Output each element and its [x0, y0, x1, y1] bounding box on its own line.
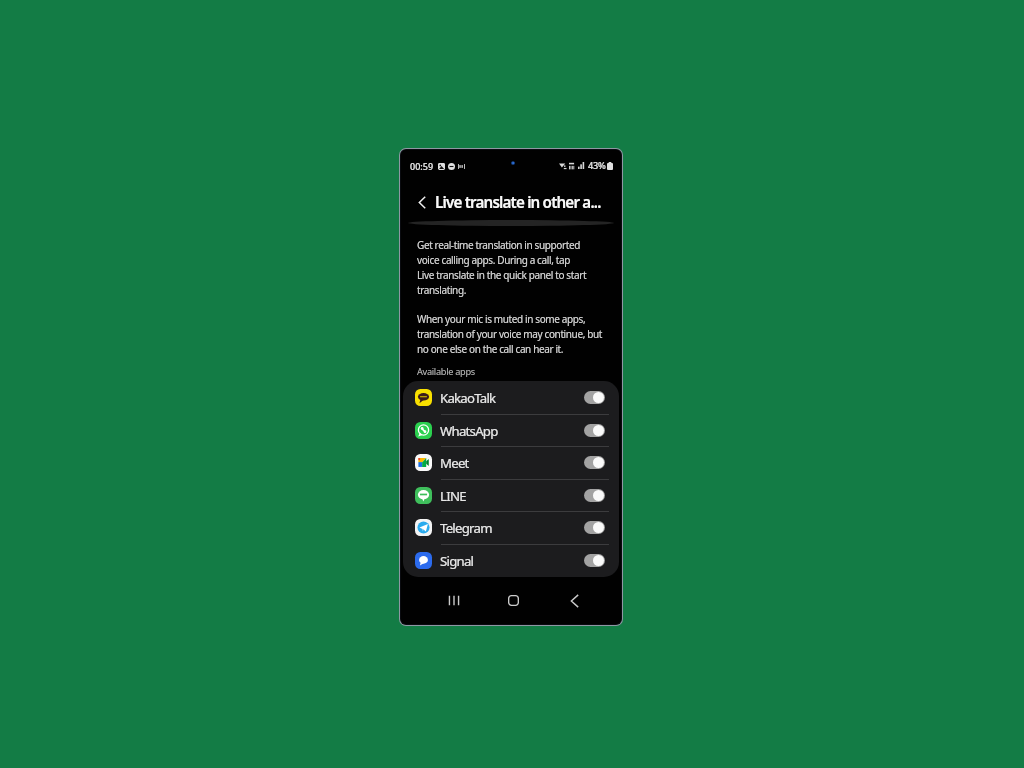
- button[interactable]: Live translate for Signal: [584, 554, 605, 567]
- staticText: WhatsApp: [440, 422, 498, 440]
- button[interactable]: Meet: [403, 446, 619, 479]
- staticText: Available apps: [417, 365, 475, 378]
- button[interactable]: LINE: [403, 479, 619, 512]
- staticText: When your mic is muted in some apps, tra…: [417, 312, 602, 356]
- staticText: 00:59: [410, 160, 434, 172]
- staticText: Telegram: [440, 519, 492, 537]
- button[interactable]: Recent apps: [439, 586, 468, 615]
- button[interactable]: WhatsApp: [403, 414, 619, 447]
- staticText: Meet: [440, 454, 469, 472]
- staticText: LINE: [440, 487, 466, 505]
- staticText: Get real-time translation in supported v…: [417, 238, 587, 297]
- staticText: Signal: [440, 552, 474, 570]
- button[interactable]: Live translate for WhatsApp: [584, 424, 605, 437]
- button[interactable]: Live translate for KakaoTalk: [584, 391, 605, 404]
- button[interactable]: Back: [560, 586, 589, 615]
- button[interactable]: Live translate for Telegram: [584, 521, 605, 534]
- staticText: Live translate in other a...: [435, 192, 601, 213]
- button[interactable]: Signal: [403, 544, 619, 577]
- button[interactable]: Live translate for Meet: [584, 456, 605, 469]
- button[interactable]: Telegram: [403, 511, 619, 544]
- staticText: 43%: [588, 159, 606, 172]
- button[interactable]: Home: [499, 586, 528, 615]
- staticText: KakaoTalk: [440, 389, 496, 407]
- button[interactable]: Navigate up: [412, 192, 432, 212]
- button[interactable]: KakaoTalk: [403, 381, 619, 414]
- button[interactable]: Live translate for LINE: [584, 489, 605, 502]
